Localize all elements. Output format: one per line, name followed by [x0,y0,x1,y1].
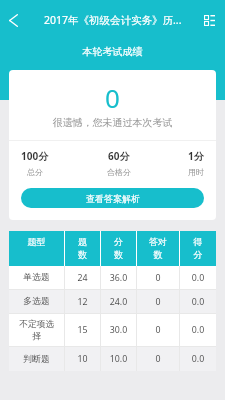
staticText: 题型 [9,236,64,247]
staticText: 100分 [21,149,49,163]
staticText: 1分 [188,149,204,163]
staticText: 0.0 [180,353,216,365]
staticText: 合格分 [107,167,131,177]
staticText: 用时 [188,167,204,177]
staticText: 查看答案解析 [86,193,140,204]
staticText: 0 [9,80,216,115]
staticText: 36.0 [101,272,136,284]
button[interactable]: 查看答案解析 [21,188,204,208]
staticText: 不定项选 择 [9,319,64,341]
staticText: 0.0 [180,296,216,308]
staticText: 2017年《初级会计实务》历... [44,13,182,27]
staticText: 0 [137,353,179,365]
staticText: 题 数 [65,236,100,261]
staticText: 多选题 [9,296,64,307]
staticText: 判断题 [9,354,64,365]
staticText: 0.0 [180,324,216,336]
staticText: 0 [137,272,179,284]
staticText: 0.0 [180,272,216,284]
staticText: 得 分 [180,236,216,261]
staticText: 单选题 [9,272,64,283]
staticText: 30.0 [101,324,136,336]
staticText: 分 数 [101,236,136,261]
button[interactable]: Back [0,0,26,40]
staticText: 15 [65,324,100,336]
staticText: 10 [65,353,100,365]
staticText: 60分 [108,149,130,163]
staticText: 24.0 [101,296,136,308]
staticText: 0 [137,324,179,336]
staticText: 本轮考试成绩 [0,45,225,58]
staticText: 0 [137,296,179,308]
staticText: 答对 数 [137,236,179,261]
staticText: 10.0 [101,353,136,365]
button[interactable]: Question list [193,0,225,40]
staticText: 总分 [27,167,43,177]
staticText: 12 [65,296,100,308]
staticText: 24 [65,272,100,284]
staticText: 很遗憾，您未通过本次考试 [9,116,216,129]
